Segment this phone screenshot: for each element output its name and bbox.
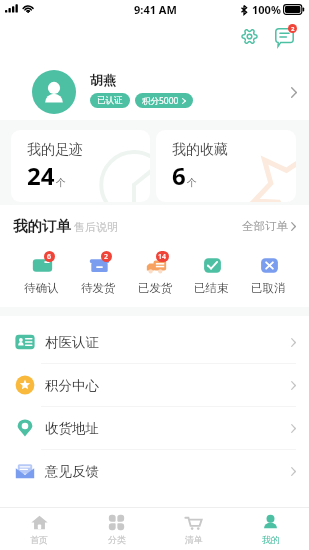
staticText: 已发货 xyxy=(138,281,173,295)
staticText: 首页 xyxy=(30,534,48,545)
staticText: 收货地址 xyxy=(45,420,99,437)
staticText: 待确认 xyxy=(24,281,59,295)
button[interactable]: 已取消 xyxy=(241,253,296,295)
staticText: 我的订单 xyxy=(13,217,71,235)
button[interactable]: 已结束 xyxy=(184,253,239,295)
staticText: 个 xyxy=(187,176,197,189)
staticText: 清单 xyxy=(185,534,203,545)
button[interactable]: 胡燕 xyxy=(0,50,309,120)
button[interactable]: 我的收藏 xyxy=(156,130,296,202)
staticText: 村医认证 xyxy=(45,334,99,351)
staticText: 14 xyxy=(158,252,167,262)
button[interactable]: 我的 xyxy=(232,511,309,548)
staticText: 全部订单 xyxy=(242,219,288,233)
button[interactable]: 售后说明 xyxy=(74,220,118,234)
staticText: 分类 xyxy=(108,534,126,545)
staticText: 积分5000 xyxy=(142,95,179,107)
button[interactable]: 分类 xyxy=(78,511,155,548)
button[interactable]: 2 xyxy=(71,253,126,295)
staticText: 个 xyxy=(56,176,66,189)
staticText: 积分中心 xyxy=(45,377,99,394)
staticText: 100% xyxy=(252,2,281,17)
staticText: 2 xyxy=(291,25,295,33)
button[interactable]: 村医认证 xyxy=(0,321,309,363)
staticText: 我的足迹 xyxy=(27,141,83,159)
button[interactable]: 积分5000 xyxy=(135,93,193,108)
staticText: 我的 xyxy=(262,534,280,545)
staticText: 9:41 AM xyxy=(134,2,177,17)
staticText: 6 xyxy=(172,159,186,192)
staticText: 已结束 xyxy=(194,281,229,295)
button[interactable]: 收货地址 xyxy=(0,407,309,449)
button[interactable]: Settings xyxy=(235,22,263,50)
staticText: 我的收藏 xyxy=(172,141,228,159)
button[interactable]: 14 xyxy=(128,253,183,295)
staticText: 待发货 xyxy=(81,281,116,295)
button[interactable]: 6 xyxy=(14,253,69,295)
staticText: 已取消 xyxy=(251,281,286,295)
button[interactable]: 首页 xyxy=(0,511,78,548)
button[interactable]: 全部订单 xyxy=(242,219,296,233)
staticText: 24 xyxy=(27,159,55,192)
button[interactable]: 意见反馈 xyxy=(0,450,309,492)
button[interactable]: 清单 xyxy=(155,511,232,548)
staticText: 2 xyxy=(104,252,109,262)
button[interactable]: 我的足迹 xyxy=(11,130,150,202)
staticText: 6 xyxy=(47,252,52,262)
staticText: 意见反馈 xyxy=(45,463,99,480)
button[interactable]: Messages xyxy=(269,22,299,50)
staticText: 胡燕 xyxy=(90,72,116,88)
button[interactable]: 积分中心 xyxy=(0,364,309,406)
staticText: 已认证 xyxy=(97,95,123,106)
